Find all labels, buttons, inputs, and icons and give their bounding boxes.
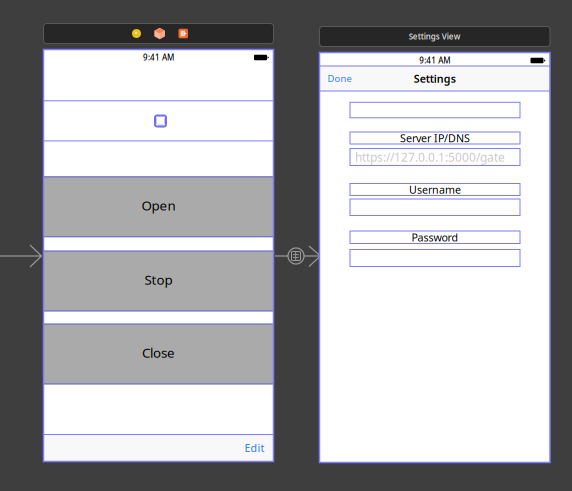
staticText: 9:41 AM: [419, 55, 450, 66]
staticText: Edit: [244, 441, 264, 455]
button[interactable]: First responder: [154, 28, 165, 39]
staticText: Settings View: [409, 31, 461, 42]
staticText: https://127.0.0.1:5000/gate: [355, 149, 505, 165]
staticText: Open: [141, 196, 175, 214]
staticText: Settings: [414, 71, 456, 86]
staticText: Server IP/DNS: [400, 131, 470, 145]
button[interactable]: View controller: [132, 28, 141, 39]
staticText: 9:41 AM: [143, 52, 174, 63]
button[interactable]: Close: [43, 324, 273, 384]
staticText: Username: [409, 182, 461, 197]
button[interactable]: Open: [43, 177, 273, 237]
staticText: Close: [142, 344, 175, 361]
staticText: Done: [327, 72, 351, 85]
button[interactable]: Stop: [43, 251, 273, 311]
button[interactable]: Edit: [234, 435, 264, 461]
staticText: Stop: [144, 271, 172, 288]
staticText: Password: [411, 230, 458, 244]
button[interactable]: Done: [327, 65, 371, 91]
button[interactable]: Exit: [178, 28, 188, 39]
